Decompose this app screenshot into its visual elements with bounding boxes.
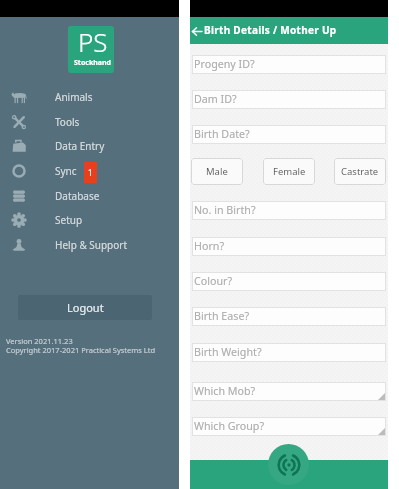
- button[interactable]: No. in Birth?: [192, 201, 386, 220]
- staticText: Birth Weight?: [194, 345, 262, 360]
- staticText: Stockhand: [74, 58, 111, 68]
- button[interactable]: Tools: [0, 110, 179, 134]
- staticText: Version 2021.11.23: [6, 336, 73, 346]
- button[interactable]: Data Entry: [0, 134, 179, 158]
- button[interactable]: Progeny ID?: [192, 55, 386, 74]
- staticText: Male: [206, 165, 228, 178]
- button[interactable]: Sync: [0, 159, 179, 183]
- button[interactable]: Setup: [0, 208, 179, 232]
- button[interactable]: Back: [190, 19, 204, 43]
- button[interactable]: Female: [263, 158, 315, 185]
- staticText: Which Group?: [194, 419, 265, 434]
- button[interactable]: Help & Support: [0, 233, 179, 257]
- staticText: Colour?: [194, 274, 233, 289]
- staticText: Data Entry: [55, 139, 105, 153]
- staticText: Database: [55, 189, 100, 203]
- staticText: Help & Support: [55, 238, 128, 252]
- button[interactable]: Horn?: [192, 237, 386, 256]
- staticText: Birth Ease?: [194, 309, 250, 324]
- button[interactable]: Birth Weight?: [192, 343, 386, 362]
- staticText: PS: [78, 26, 108, 59]
- staticText: Horn?: [194, 239, 225, 254]
- staticText: Tools: [55, 115, 80, 129]
- staticText: Birth Details / Mother Up: [204, 23, 337, 37]
- button[interactable]: Which Group?: [192, 417, 386, 436]
- button[interactable]: Which Mob?: [192, 382, 386, 401]
- staticText: Sync: [55, 164, 77, 178]
- staticText: Birth Date?: [194, 127, 250, 142]
- staticText: Copyright 2017-2021 Practical Systems Lt…: [6, 345, 156, 355]
- button[interactable]: Scan RFID tag: [268, 444, 309, 485]
- staticText: Castrate: [341, 165, 379, 178]
- staticText: Logout: [67, 300, 104, 315]
- button[interactable]: Colour?: [192, 272, 386, 291]
- staticText: Animals: [55, 90, 93, 104]
- button[interactable]: Animals: [0, 85, 179, 109]
- button[interactable]: Database: [0, 184, 179, 208]
- staticText: Setup: [55, 213, 83, 227]
- button[interactable]: Male: [191, 158, 243, 185]
- staticText: Female: [273, 165, 306, 178]
- staticText: Progeny ID?: [194, 57, 255, 72]
- staticText: Dam ID?: [194, 92, 237, 107]
- button[interactable]: Logout: [18, 295, 152, 320]
- button[interactable]: Birth Date?: [192, 125, 386, 144]
- staticText: 1: [88, 167, 93, 178]
- button[interactable]: Birth Ease?: [192, 307, 386, 326]
- staticText: Which Mob?: [194, 384, 256, 399]
- button[interactable]: Dam ID?: [192, 90, 386, 109]
- staticText: No. in Birth?: [194, 203, 256, 218]
- button[interactable]: Castrate: [334, 158, 386, 185]
